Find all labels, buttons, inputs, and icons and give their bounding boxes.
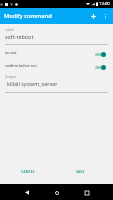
button[interactable]: CANCEL <box>2 166 54 177</box>
button[interactable]: confirm before run <box>0 59 113 72</box>
staticText: confirm before run <box>5 63 37 68</box>
button[interactable]: SAVE <box>54 166 107 177</box>
staticText: 13:00 <box>99 1 110 7</box>
staticText: Modify command <box>4 12 52 20</box>
staticText: Label <box>5 27 15 32</box>
button[interactable]: Back <box>20 186 33 199</box>
button[interactable]: Add <box>87 10 100 23</box>
button[interactable]: as root <box>0 45 113 59</box>
staticText: SAVE <box>76 169 85 174</box>
staticText: soft-reboot <box>5 33 34 40</box>
button[interactable]: More options <box>100 10 111 23</box>
staticText: CANCEL <box>21 169 35 174</box>
staticText: killall system_server <box>7 80 58 87</box>
staticText: Scripts <box>5 74 17 79</box>
button[interactable]: Home <box>50 186 63 199</box>
button[interactable]: Recents <box>80 186 93 199</box>
staticText: as root <box>5 50 17 55</box>
